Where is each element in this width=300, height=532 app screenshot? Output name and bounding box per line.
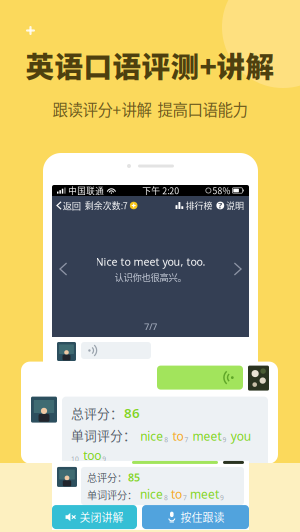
staticText: 9	[223, 435, 227, 444]
staticText: 中国联通	[68, 184, 104, 197]
staticText: to	[172, 428, 183, 444]
staticText: 58%	[213, 184, 231, 197]
staticText: 排行榜	[185, 199, 212, 212]
button[interactable]: ?	[214, 196, 246, 215]
staticText: 返回	[63, 199, 81, 212]
staticText: 86	[124, 404, 140, 422]
staticText: 单词评分：	[71, 425, 136, 444]
staticText: 8	[164, 435, 168, 444]
staticText: nice	[140, 486, 163, 502]
staticText: you	[231, 428, 251, 444]
staticText: 7	[184, 435, 188, 444]
button[interactable]: Next sentence	[228, 257, 247, 281]
staticText: 说明	[226, 199, 244, 212]
staticText: 英语口语评测+讲解	[25, 44, 274, 86]
staticText: 关闭讲解	[79, 509, 123, 525]
staticText: to	[171, 486, 182, 502]
staticText: 85	[128, 470, 140, 484]
staticText: 认识你也很高兴。	[114, 270, 186, 284]
staticText: 剩余次数:7	[85, 199, 128, 212]
staticText: 按住跟读	[180, 509, 224, 525]
staticText: too	[83, 447, 101, 463]
staticText: meet	[193, 428, 222, 444]
button[interactable]: 返回	[55, 196, 83, 215]
staticText: 7	[183, 493, 187, 502]
staticText: 跟读评分+讲解 提高口语能力	[52, 98, 247, 120]
button[interactable]: 关闭讲解	[52, 505, 137, 529]
button[interactable]: 按住跟读	[142, 505, 249, 529]
button[interactable]: Previous sentence	[54, 257, 73, 281]
staticText: nice	[140, 428, 163, 444]
staticText: 8	[164, 493, 168, 502]
staticText: Nice to meet you, too.	[95, 254, 205, 269]
staticText: 单词评分：	[87, 487, 137, 502]
staticText: ?	[218, 200, 222, 211]
staticText: 下午 2:20	[142, 184, 179, 197]
staticText: 总评分：	[71, 404, 123, 422]
staticText: 总评分：	[87, 470, 127, 485]
button[interactable]: 剩余次数:7	[83, 196, 139, 215]
staticText: meet	[190, 486, 219, 502]
staticText: 10	[71, 454, 79, 463]
button[interactable]: 排行榜	[174, 196, 214, 215]
staticText: 9	[102, 454, 106, 463]
staticText: 7/7	[144, 321, 157, 333]
staticText: 9	[220, 493, 224, 502]
